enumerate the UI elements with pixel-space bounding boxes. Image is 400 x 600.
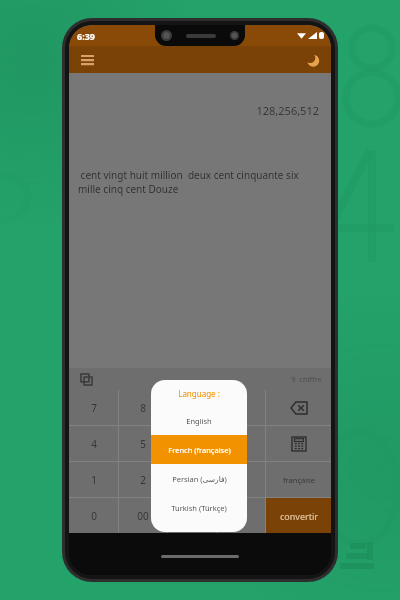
- button[interactable]: Persian (فارسی): [151, 464, 247, 493]
- staticText: 6: [189, 437, 195, 451]
- staticText: 3: [189, 473, 195, 487]
- staticText: Persian (فارسی): [172, 474, 227, 484]
- staticText: 0: [91, 509, 97, 523]
- staticText: Language :: [178, 388, 220, 399]
- button[interactable]: 00: [119, 498, 167, 533]
- button[interactable]: [266, 426, 331, 461]
- button[interactable]: French (française): [151, 435, 247, 464]
- staticText: 7: [91, 401, 97, 415]
- staticText: 00: [137, 509, 149, 523]
- button[interactable]: 3: [168, 462, 216, 497]
- button[interactable]: 8: [119, 390, 167, 425]
- button[interactable]: Night mode: [301, 48, 325, 72]
- button[interactable]: 5: [119, 426, 167, 461]
- button[interactable]: .: [168, 498, 216, 533]
- button[interactable]: 6: [168, 426, 216, 461]
- button[interactable]: [266, 390, 331, 425]
- button[interactable]: -: [217, 462, 265, 497]
- button[interactable]: ×: [217, 426, 265, 461]
- button[interactable]: française: [266, 462, 331, 497]
- staticText: English: [186, 416, 212, 426]
- staticText: 128,256,512: [69, 103, 319, 118]
- staticText: cent vingt huit million deux cent cinqua…: [78, 168, 322, 196]
- staticText: Turkish (Türkçe): [171, 503, 227, 513]
- button[interactable]: +: [217, 498, 265, 533]
- button[interactable]: 4: [69, 426, 118, 461]
- staticText: 1: [91, 473, 97, 487]
- staticText: 9 chiffre: [291, 374, 322, 384]
- staticText: française: [283, 475, 315, 485]
- button[interactable]: 7: [69, 390, 118, 425]
- button[interactable]: 2: [119, 462, 167, 497]
- button[interactable]: Menu: [75, 48, 99, 72]
- button[interactable]: 9: [168, 390, 216, 425]
- button[interactable]: English: [151, 406, 247, 435]
- button[interactable]: 1: [69, 462, 118, 497]
- button[interactable]: 0: [69, 498, 118, 533]
- staticText: 8: [140, 401, 146, 415]
- staticText: convertir: [280, 510, 318, 522]
- staticText: 5: [140, 437, 146, 451]
- staticText: .: [191, 509, 194, 523]
- staticText: French (française): [168, 445, 231, 455]
- button[interactable]: Turkish (Türkçe): [151, 493, 247, 522]
- button[interactable]: convertir: [266, 498, 331, 533]
- button[interactable]: C: [217, 390, 265, 425]
- staticText: 6:39: [77, 30, 95, 42]
- staticText: 2: [140, 473, 146, 487]
- staticText: 4: [91, 437, 97, 451]
- button[interactable]: Copy: [77, 370, 95, 388]
